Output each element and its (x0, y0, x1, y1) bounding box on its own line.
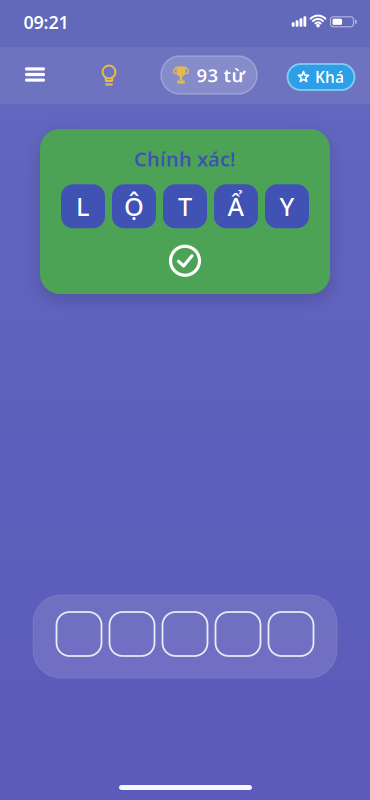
button[interactable]: Khá (287, 64, 354, 90)
staticText: Ộ (124, 189, 144, 223)
button[interactable]: Hint (96, 62, 122, 92)
button[interactable]: 93 từ (161, 56, 257, 94)
staticText: Chính xác! (134, 145, 236, 172)
staticText: 93 từ (196, 62, 245, 88)
staticText: 09:21 (23, 10, 68, 34)
staticText: Ẩ (227, 189, 244, 223)
staticText: L (76, 189, 90, 223)
staticText: Y (279, 189, 294, 223)
button[interactable]: Menu (19, 61, 51, 88)
staticText: Khá (315, 67, 344, 87)
staticText: T (178, 189, 192, 223)
